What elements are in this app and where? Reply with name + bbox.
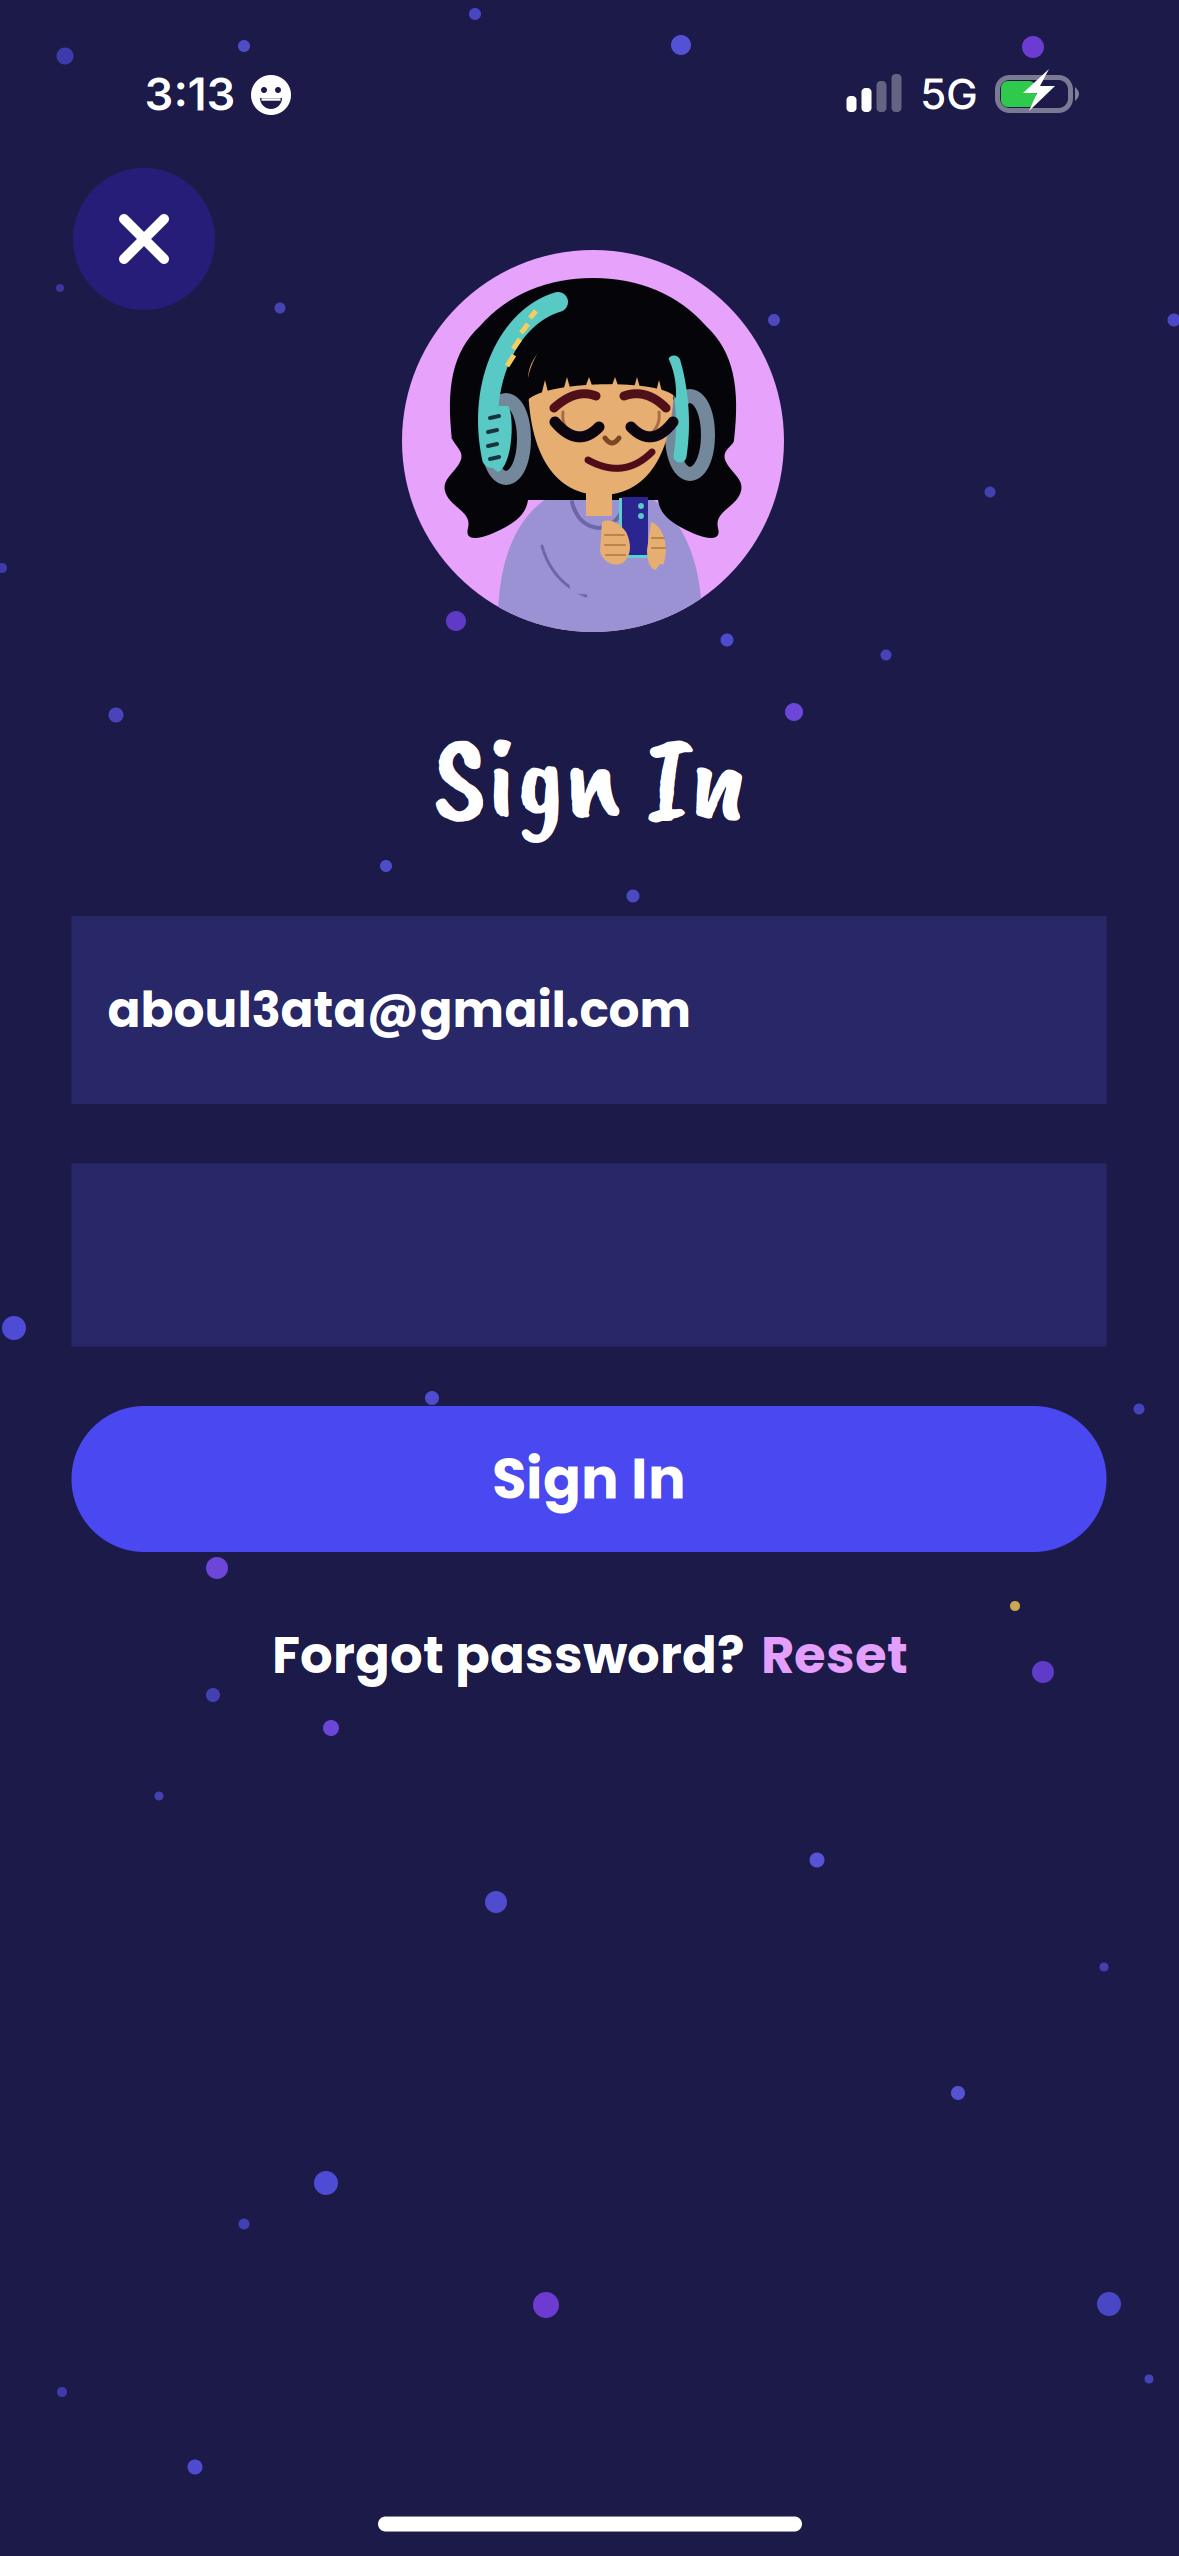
- staticText: 5G: [920, 68, 978, 120]
- staticText: Reset: [761, 1619, 908, 1691]
- staticText: aboul3ata@gmail.com: [107, 976, 691, 1044]
- button[interactable]: aboul3ata@gmail.com: [71, 916, 1106, 1104]
- button[interactable]: Close: [73, 168, 215, 310]
- staticText: Forgot password?: [272, 1619, 745, 1691]
- button[interactable]: Reset: [761, 1619, 908, 1691]
- staticText: 3:13: [144, 67, 235, 121]
- button[interactable]: Sign In: [71, 1406, 1106, 1552]
- staticText: Sign In: [433, 698, 747, 854]
- staticText: Sign In: [492, 1440, 686, 1518]
